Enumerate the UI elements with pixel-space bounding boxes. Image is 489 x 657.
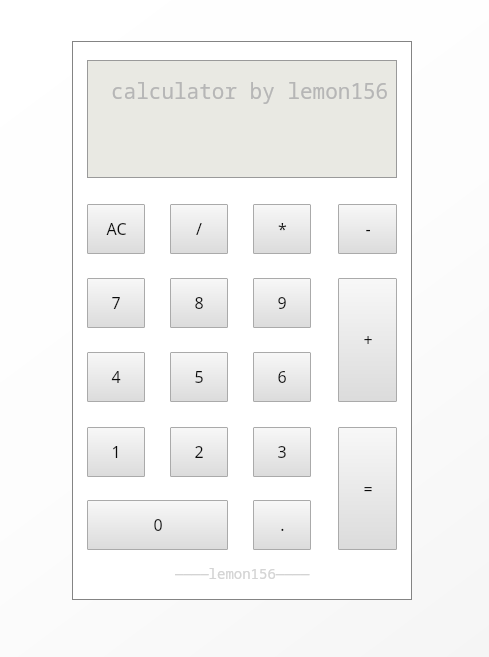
- button[interactable]: .: [253, 500, 311, 550]
- staticText: .: [280, 514, 285, 536]
- staticText: 6: [277, 366, 287, 388]
- button[interactable]: 6: [253, 352, 311, 402]
- button[interactable]: *: [253, 204, 311, 254]
- button[interactable]: 5: [170, 352, 228, 402]
- staticText: +: [363, 329, 373, 351]
- staticText: 5: [194, 366, 204, 388]
- staticText: 4: [111, 366, 121, 388]
- button[interactable]: 4: [87, 352, 145, 402]
- button[interactable]: AC: [87, 204, 145, 254]
- button[interactable]: 0: [87, 500, 228, 550]
- staticText: 2: [194, 441, 204, 463]
- staticText: 8: [194, 292, 204, 314]
- button[interactable]: +: [338, 278, 397, 402]
- staticText: 0: [153, 514, 163, 536]
- button[interactable]: 3: [253, 427, 311, 477]
- button[interactable]: /: [170, 204, 228, 254]
- button[interactable]: =: [338, 427, 397, 550]
- staticText: /: [196, 218, 202, 240]
- staticText: 3: [277, 441, 287, 463]
- staticText: 9: [277, 292, 287, 314]
- button[interactable]: 1: [87, 427, 145, 477]
- staticText: *: [278, 218, 287, 240]
- staticText: 1: [111, 441, 121, 463]
- staticText: calculator by lemon156: [111, 77, 389, 106]
- button[interactable]: 9: [253, 278, 311, 328]
- staticText: ————lemon156————: [175, 564, 310, 583]
- button[interactable]: 2: [170, 427, 228, 477]
- staticText: 7: [111, 292, 121, 314]
- staticText: =: [363, 478, 373, 500]
- button[interactable]: 8: [170, 278, 228, 328]
- staticText: AC: [106, 218, 127, 240]
- button[interactable]: -: [338, 204, 397, 254]
- staticText: -: [365, 218, 371, 240]
- button[interactable]: 7: [87, 278, 145, 328]
